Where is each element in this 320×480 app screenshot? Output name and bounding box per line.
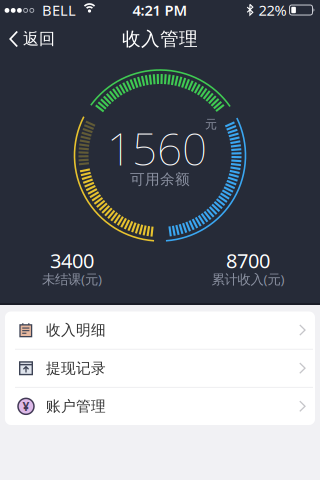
- staticText: 3400: [50, 247, 94, 274]
- staticText: 收入明细: [46, 321, 106, 339]
- staticText: 22%: [258, 0, 286, 20]
- staticText: 4:21 PM: [132, 0, 187, 20]
- staticText: 收入管理: [122, 27, 198, 50]
- staticText: 累计收入(元): [211, 270, 284, 288]
- button[interactable]: 收入明细: [5, 311, 315, 349]
- staticText: ¥: [22, 398, 29, 414]
- staticText: 1560: [107, 119, 207, 178]
- staticText: BELL: [42, 0, 76, 20]
- button[interactable]: 提现记录: [5, 350, 315, 387]
- staticText: 提现记录: [46, 359, 106, 377]
- staticText: 元: [205, 117, 217, 132]
- staticText: 可用余额: [130, 170, 190, 188]
- staticText: 8700: [226, 247, 270, 274]
- staticText: 未结课(元): [42, 270, 102, 288]
- staticText: 账户管理: [46, 397, 106, 415]
- button[interactable]: ¥: [5, 388, 315, 425]
- staticText: 返回: [23, 29, 55, 49]
- button[interactable]: 返回: [0, 29, 55, 49]
